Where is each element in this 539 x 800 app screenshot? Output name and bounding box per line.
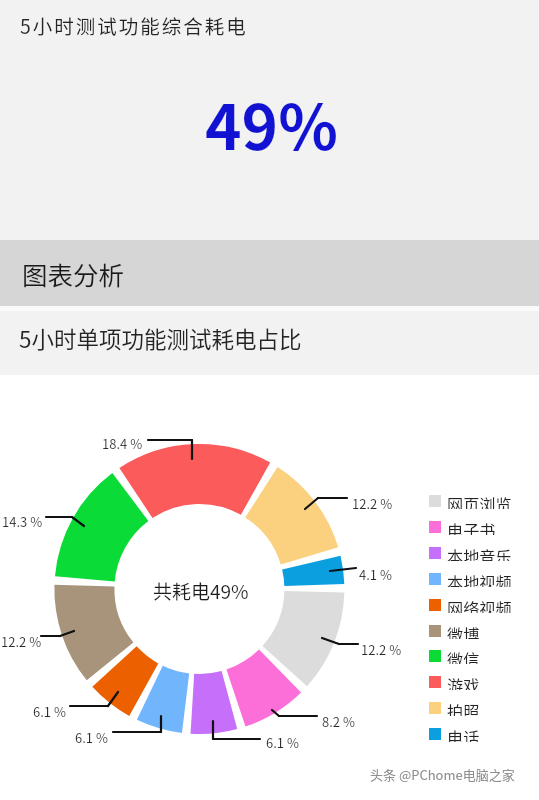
- staticText: 共耗电49%: [153, 577, 249, 605]
- staticText: 14.3 %: [2, 512, 43, 531]
- staticText: 6.1 %: [33, 702, 66, 721]
- staticText: 12.2 %: [352, 494, 393, 513]
- staticText: 微博: [447, 622, 480, 639]
- button[interactable]: 电子书: [429, 518, 496, 535]
- button[interactable]: 本地视频: [429, 570, 512, 587]
- button[interactable]: 拍照: [429, 699, 480, 716]
- staticText: 4.1 %: [359, 565, 392, 584]
- staticText: 12.2 %: [361, 640, 402, 659]
- staticText: 12.2 %: [1, 632, 42, 651]
- button[interactable]: 网络视频: [429, 596, 512, 613]
- staticText: 微信: [447, 647, 480, 664]
- staticText: 5小时单项功能测试耗电占比: [19, 322, 302, 355]
- button[interactable]: 微博: [429, 622, 480, 639]
- button[interactable]: 游戏: [429, 673, 480, 690]
- staticText: 5小时测试功能综合耗电: [20, 11, 248, 39]
- staticText: 8.2 %: [322, 712, 355, 731]
- staticText: 网页浏览: [447, 492, 512, 509]
- button[interactable]: 电话: [429, 725, 480, 742]
- staticText: 网络视频: [447, 596, 512, 613]
- button[interactable]: 本地音乐: [429, 544, 512, 561]
- staticText: 本地音乐: [447, 544, 512, 561]
- staticText: 图表分析: [22, 255, 125, 292]
- staticText: 拍照: [447, 699, 480, 716]
- staticText: 49%: [205, 78, 338, 168]
- staticText: 头条 @PChome电脑之家: [370, 765, 515, 784]
- staticText: 本地视频: [447, 570, 512, 587]
- staticText: 18.4 %: [102, 434, 143, 453]
- staticText: 游戏: [447, 673, 480, 690]
- staticText: 6.1 %: [266, 733, 299, 752]
- staticText: 电子书: [447, 518, 496, 535]
- staticText: 6.1 %: [75, 728, 108, 747]
- button[interactable]: 微信: [429, 647, 480, 664]
- button[interactable]: 网页浏览: [429, 492, 512, 509]
- staticText: 电话: [447, 725, 480, 742]
